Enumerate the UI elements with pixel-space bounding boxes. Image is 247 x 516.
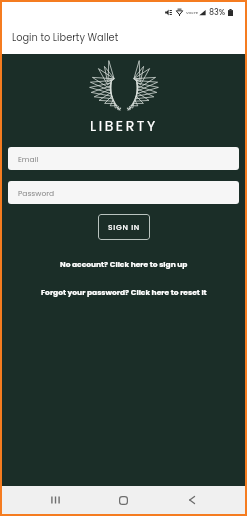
- button[interactable]: Recent apps: [37, 489, 73, 511]
- staticText: Email: [18, 154, 39, 164]
- button[interactable]: Email: [8, 147, 239, 170]
- staticText: Password: [18, 188, 55, 198]
- button[interactable]: No account? Click here to sign up: [60, 259, 188, 269]
- button[interactable]: Back: [174, 489, 210, 511]
- button[interactable]: Password: [8, 181, 239, 204]
- staticText: Login to Liberty Wallet: [12, 31, 119, 45]
- staticText: SIGN IN: [108, 222, 140, 232]
- button[interactable]: SIGN IN: [98, 214, 150, 240]
- staticText: LIBERTY: [90, 116, 158, 136]
- staticText: 83%: [209, 7, 226, 18]
- button[interactable]: Home: [105, 489, 141, 511]
- button[interactable]: Forgot your password? Click here to rese…: [41, 287, 207, 297]
- staticText: VoLTE: [186, 10, 198, 16]
